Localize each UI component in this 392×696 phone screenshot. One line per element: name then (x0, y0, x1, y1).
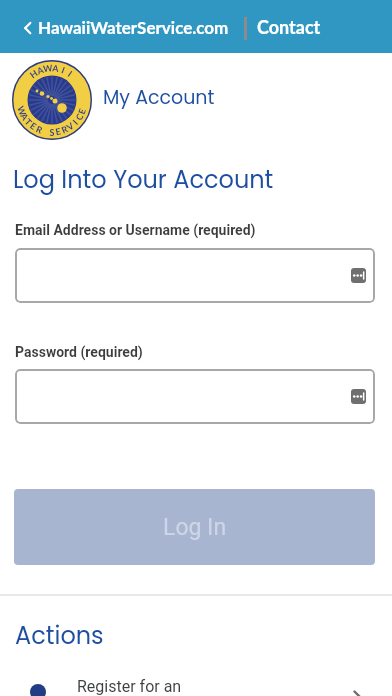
staticText: Log Into Your Account (13, 163, 274, 197)
button[interactable] (15, 369, 375, 424)
staticText: HawaiiWaterService.com (38, 17, 229, 37)
staticText: Password (required) (15, 344, 143, 360)
button[interactable]: HawaiiWaterService.com (14, 0, 234, 53)
button[interactable]: Log In (14, 489, 375, 565)
staticText: Register for an (77, 677, 182, 696)
staticText: Actions (15, 619, 104, 653)
button[interactable]: Register for an (0, 662, 392, 696)
staticText: Email Address or Username (required) (15, 222, 256, 238)
button[interactable]: Contact (248, 0, 334, 53)
button[interactable] (15, 248, 375, 303)
staticText: My Account (103, 84, 215, 111)
staticText: Log In (163, 514, 227, 541)
staticText: Contact (257, 16, 321, 38)
